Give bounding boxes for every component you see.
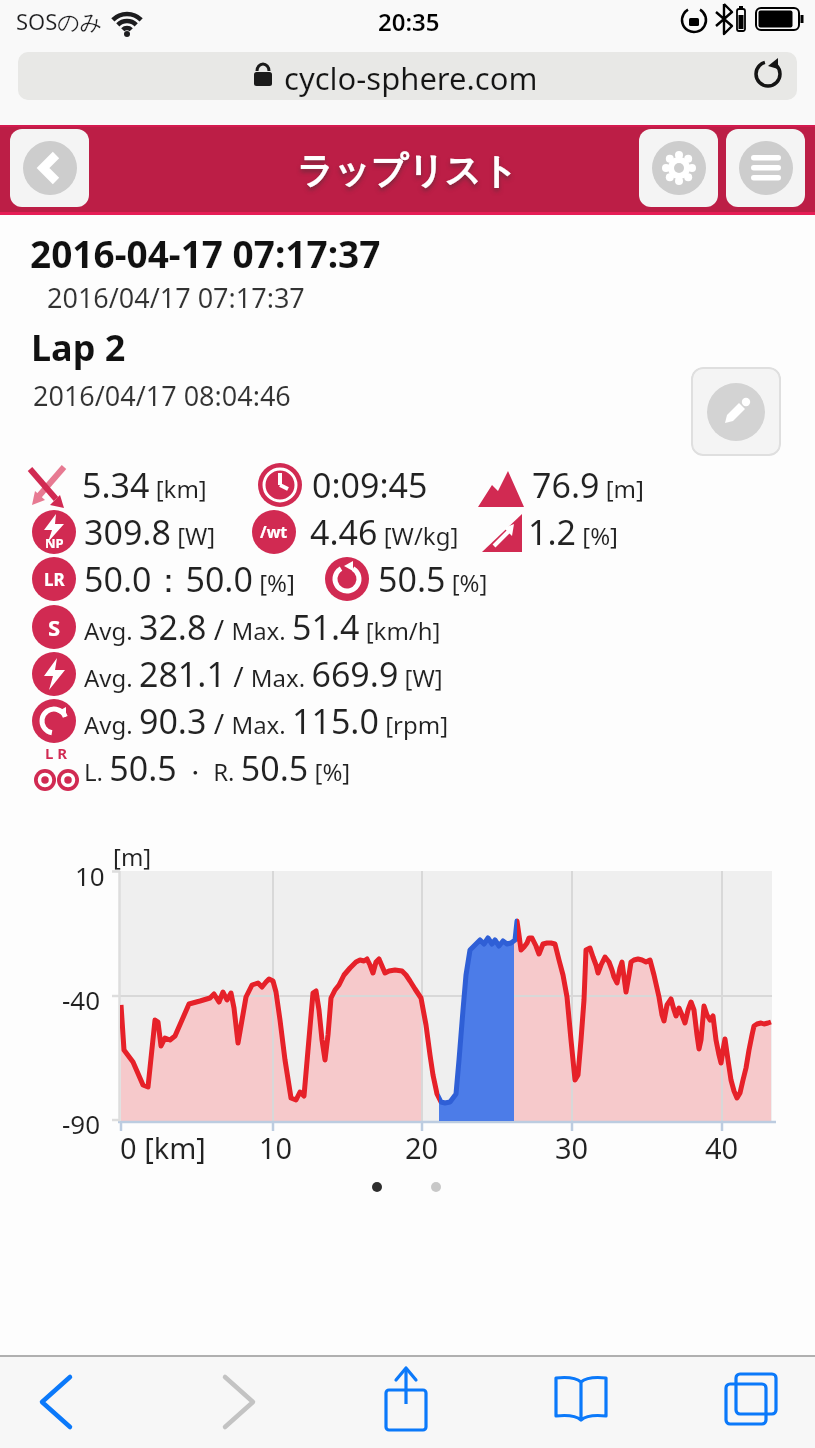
staticText: L R: [45, 743, 68, 763]
staticText: 50.0：50.0 [%]: [84, 556, 295, 602]
staticText: 50.5 [%]: [378, 556, 488, 602]
staticText: Avg. 90.3 / Max. 115.0 [rpm]: [84, 698, 449, 744]
staticText: cyclo-sphere.com: [284, 57, 538, 99]
button[interactable]: [431, 1182, 441, 1192]
staticText: Lap 2: [31, 323, 126, 372]
staticText: 0:09:45: [312, 462, 428, 508]
staticText: 20: [405, 1128, 439, 1167]
button[interactable]: [691, 367, 781, 456]
staticText: 2016/04/17 08:04:46: [33, 377, 291, 414]
staticText: 76.9 [m]: [532, 462, 644, 508]
staticText: 309.8 [W]: [84, 509, 216, 555]
button[interactable]: [30, 1372, 90, 1432]
staticText: NP: [45, 534, 64, 552]
staticText: S: [48, 612, 61, 642]
staticText: 4.46 [W/kg]: [310, 509, 459, 555]
button[interactable]: [550, 1372, 612, 1428]
button[interactable]: [722, 1372, 784, 1428]
staticText: LR: [44, 568, 65, 591]
button[interactable]: [372, 1182, 382, 1192]
staticText: 40: [705, 1128, 739, 1167]
staticText: 20:35: [378, 5, 440, 38]
staticText: SOSのみ: [16, 6, 103, 36]
staticText: 5.34 [km]: [82, 462, 207, 508]
staticText: 30: [555, 1128, 589, 1167]
staticText: /wt: [260, 521, 288, 543]
staticText: 2016-04-17 07:17:37: [30, 228, 381, 278]
staticText: Avg. 32.8 / Max. 51.4 [km/h]: [84, 604, 441, 650]
button[interactable]: [205, 1372, 265, 1432]
staticText: 1.2 [%]: [528, 509, 618, 555]
staticText: [m]: [113, 840, 152, 873]
button[interactable]: [378, 1368, 434, 1434]
staticText: ラップリスト: [297, 148, 519, 193]
button[interactable]: [639, 129, 718, 207]
button[interactable]: [10, 129, 89, 207]
button[interactable]: [726, 129, 805, 207]
staticText: L. 50.5 ・ R. 50.5 [%]: [84, 745, 351, 791]
staticText: 10: [259, 1128, 293, 1167]
staticText: 2016/04/17 07:17:37: [47, 279, 305, 316]
button[interactable]: [18, 52, 797, 100]
staticText: -40: [62, 982, 101, 1017]
staticText: 10: [75, 858, 105, 893]
staticText: 0 [km]: [120, 1128, 206, 1167]
staticText: Avg. 281.1 / Max. 669.9 [W]: [84, 651, 443, 697]
staticText: -90: [62, 1106, 101, 1141]
